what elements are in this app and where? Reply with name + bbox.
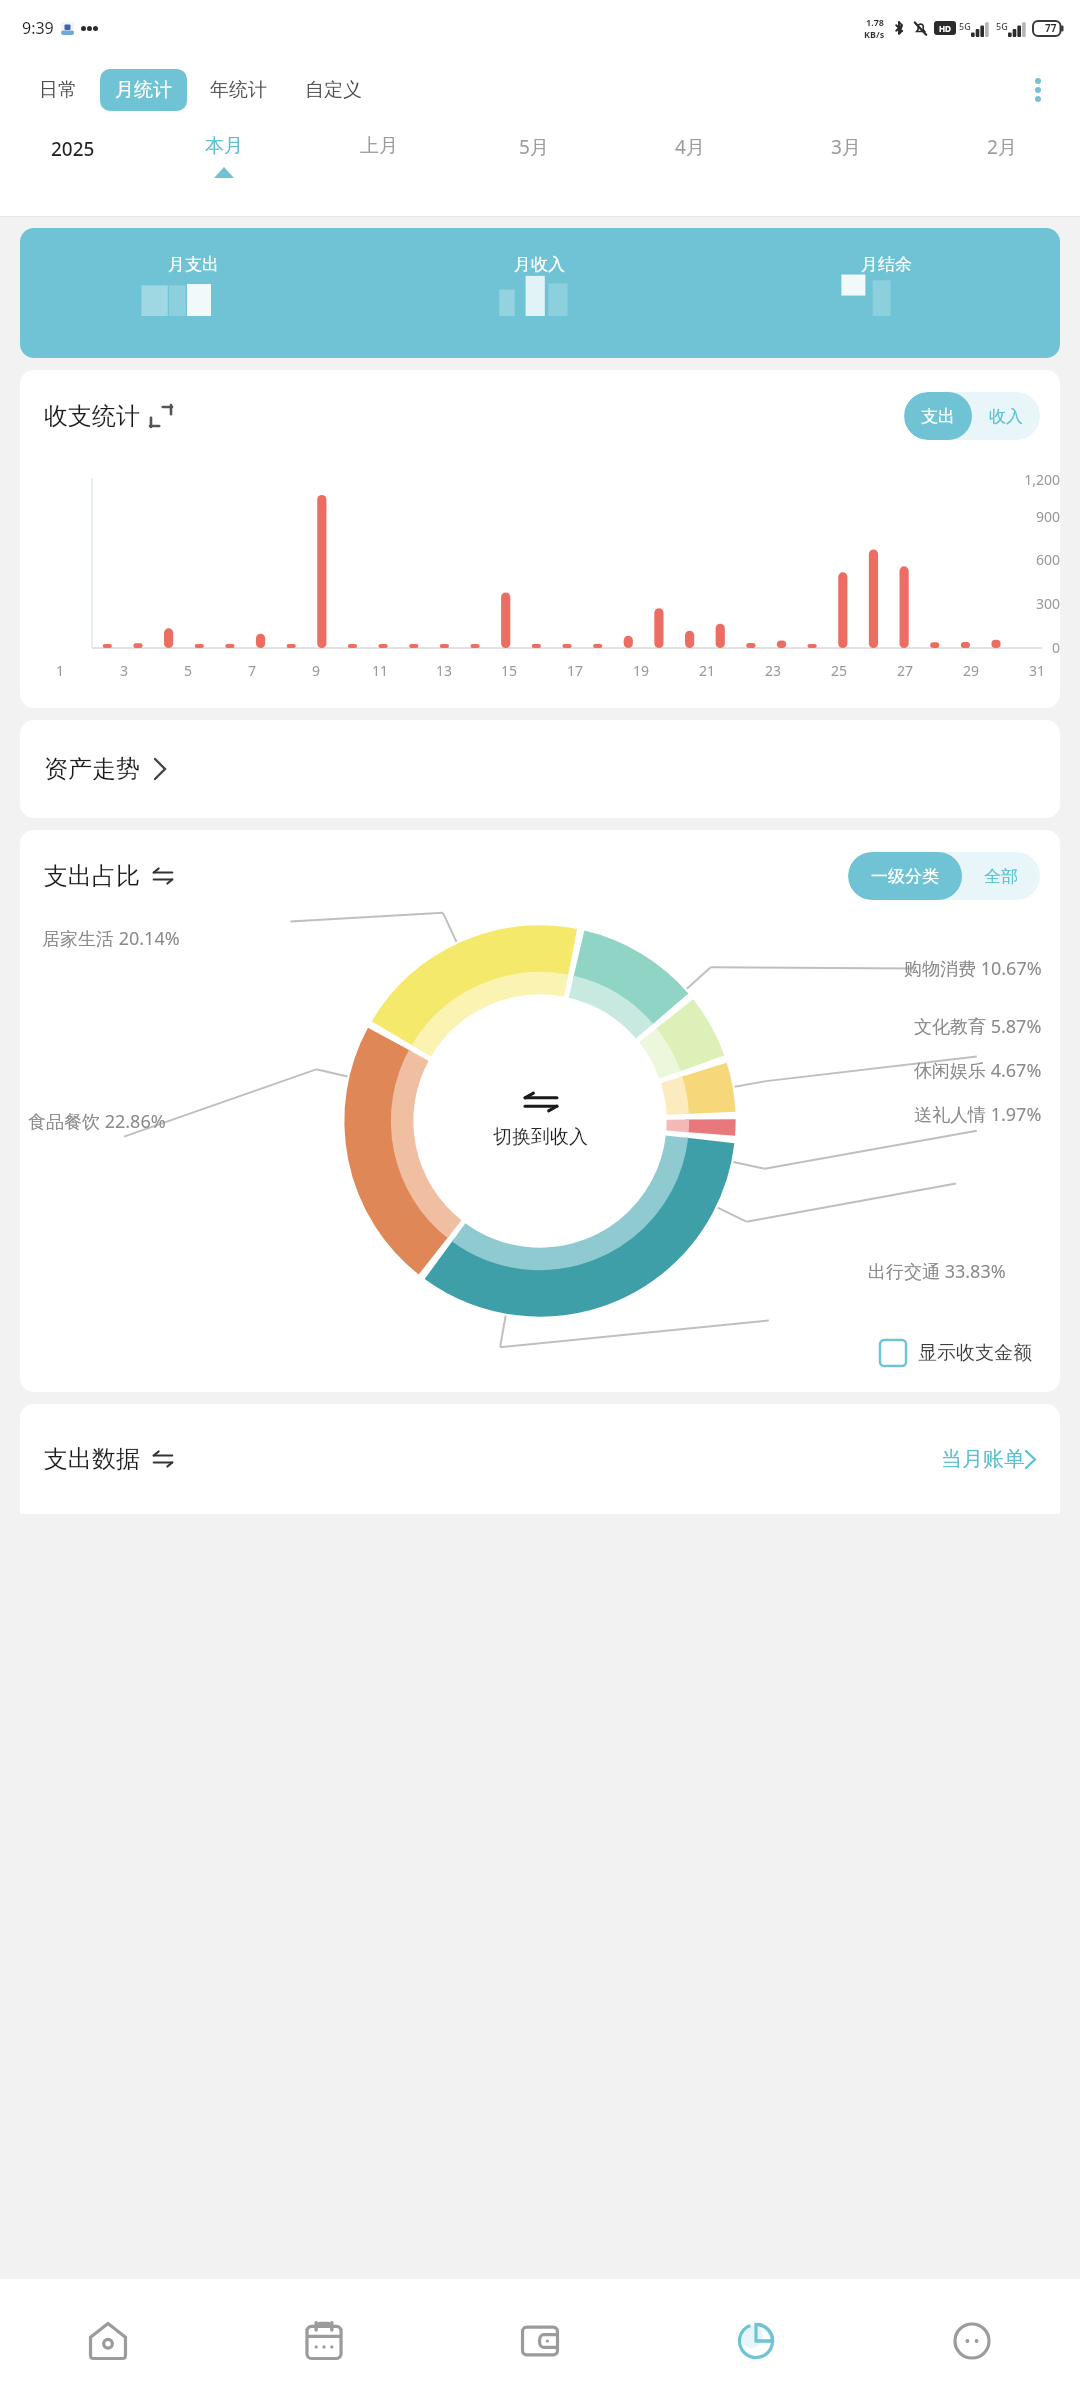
staticText: 600 <box>998 550 1060 569</box>
staticText: 15 <box>501 661 518 680</box>
button[interactable]: 本月 <box>146 124 301 202</box>
button[interactable]: 上月 <box>301 124 456 202</box>
staticText: 4月 <box>675 134 705 160</box>
button[interactable]: 首页 <box>0 2279 216 2403</box>
staticText: 27 <box>897 661 914 680</box>
staticText: 5月 <box>519 134 549 160</box>
staticText: 自定义 <box>305 78 362 102</box>
staticText: 5G <box>959 20 971 32</box>
staticText: 1.78 <box>866 16 884 28</box>
staticText: 休闲娱乐 4.67% <box>914 1058 1042 1083</box>
staticText: 上月 <box>360 134 398 158</box>
staticText: 1,200 <box>998 470 1060 489</box>
staticText: 77 <box>1045 21 1057 35</box>
staticText: 支出占比 <box>44 861 140 891</box>
staticText: 支出数据 <box>44 1444 140 1474</box>
staticText: 文化教育 5.87% <box>914 1014 1042 1039</box>
button[interactable]: 图表 <box>648 2279 864 2403</box>
button[interactable]: 资产走势 <box>20 720 1060 818</box>
staticText: 本月 <box>205 134 243 158</box>
staticText: 出行交通 33.83% <box>868 1259 1006 1284</box>
staticText: 11 <box>372 661 389 680</box>
button[interactable]: 自定义 <box>290 69 377 111</box>
staticText: 月统计 <box>115 78 172 102</box>
button[interactable]: 年统计 <box>195 69 282 111</box>
staticText: 月收入 <box>514 254 565 275</box>
staticText: 13 <box>436 661 453 680</box>
button[interactable]: 钱包 <box>432 2279 648 2403</box>
staticText: 送礼人情 1.97% <box>914 1102 1042 1127</box>
staticText: 19 <box>633 661 650 680</box>
button[interactable]: 一级分类 <box>848 852 962 900</box>
staticText: 一级分类 <box>871 866 939 887</box>
staticText: 21 <box>699 661 716 680</box>
staticText: 购物消费 10.67% <box>904 956 1042 981</box>
staticText: 1 <box>56 661 65 680</box>
button[interactable]: 显示收支金额 <box>880 1340 1032 1366</box>
button[interactable]: 4月 <box>612 124 768 202</box>
staticText: 5 <box>184 661 193 680</box>
staticText: 年统计 <box>210 78 267 102</box>
staticText: KB/s <box>864 28 885 40</box>
button[interactable]: 3月 <box>768 124 924 202</box>
button[interactable]: 全屏 <box>150 405 172 427</box>
staticText: 25 <box>831 661 848 680</box>
button[interactable]: 月支出 <box>20 228 1060 358</box>
button[interactable]: 全部 <box>962 852 1040 900</box>
staticText: 5G <box>996 20 1008 32</box>
staticText: 3 <box>120 661 129 680</box>
staticText: 3月 <box>831 134 861 160</box>
button[interactable]: 5月 <box>456 124 612 202</box>
button[interactable]: 更多选项 <box>1016 68 1060 112</box>
staticText: 全部 <box>984 866 1018 887</box>
staticText: 显示收支金额 <box>918 1341 1032 1365</box>
button[interactable]: 切换 <box>152 865 174 887</box>
staticText: 2月 <box>987 134 1017 160</box>
button[interactable]: 收入 <box>972 392 1040 440</box>
button[interactable]: 更多 <box>864 2279 1080 2403</box>
staticText: 收入 <box>989 406 1023 427</box>
staticText: 31 <box>1029 661 1046 680</box>
button[interactable]: 当月账单 <box>941 1446 1036 1472</box>
staticText: 日常 <box>39 78 77 102</box>
button[interactable]: 切换 <box>152 1448 174 1470</box>
button[interactable]: 日历 <box>216 2279 432 2403</box>
staticText: 0 <box>998 638 1060 657</box>
staticText: 居家生活 20.14% <box>42 926 180 951</box>
staticText: 7 <box>248 661 257 680</box>
staticText: 月支出 <box>168 254 219 275</box>
staticText: 2025 <box>51 136 95 162</box>
button[interactable]: 切换到收入 <box>493 1089 588 1149</box>
staticText: 当月账单 <box>941 1446 1025 1472</box>
staticText: 食品餐饮 22.86% <box>28 1109 166 1134</box>
staticText: 9 <box>312 661 321 680</box>
button[interactable]: 支出 <box>904 392 972 440</box>
staticText: 9:39 <box>22 17 54 39</box>
staticText: 300 <box>998 594 1060 613</box>
button[interactable]: 月统计 <box>100 69 187 111</box>
staticText: 900 <box>998 507 1060 526</box>
staticText: 资产走势 <box>44 754 140 784</box>
staticText: HD <box>939 23 951 34</box>
staticText: 收支统计 <box>44 401 140 431</box>
staticText: 切换到收入 <box>493 1125 588 1149</box>
staticText: 23 <box>765 661 782 680</box>
button[interactable]: 日常 <box>24 69 92 111</box>
staticText: 17 <box>567 661 584 680</box>
staticText: 支出 <box>921 406 955 427</box>
staticText: 月结余 <box>861 254 912 275</box>
staticText: 29 <box>963 661 980 680</box>
button[interactable]: 2月 <box>924 124 1080 202</box>
